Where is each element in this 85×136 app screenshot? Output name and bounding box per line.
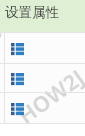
button[interactable]: List bbox=[0, 33, 85, 63]
other: List bbox=[11, 43, 24, 56]
staticText: HOW2J bbox=[0, 11, 6, 80]
other: List bbox=[11, 103, 24, 116]
staticText: HOW2J bbox=[11, 61, 85, 130]
staticText: 设置属性 bbox=[5, 4, 59, 21]
button[interactable]: List bbox=[0, 93, 85, 123]
other: List bbox=[11, 73, 24, 86]
button[interactable]: List bbox=[0, 64, 85, 92]
